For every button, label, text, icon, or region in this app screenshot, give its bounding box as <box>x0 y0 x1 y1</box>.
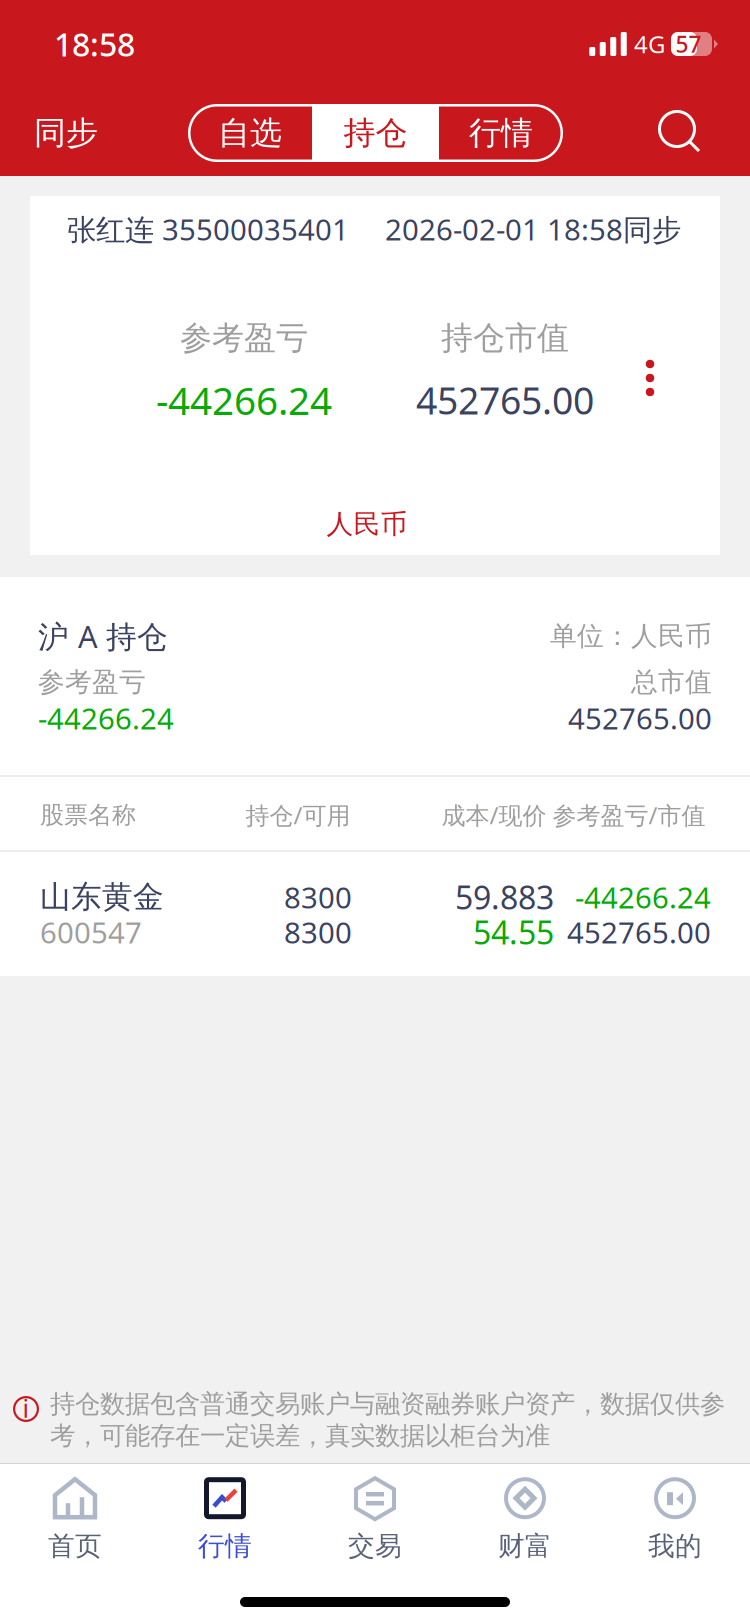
staticText: 持仓/可用 <box>245 799 350 831</box>
staticText: 参考盈亏/市值 <box>552 799 705 831</box>
button[interactable]: 交易 <box>300 1469 450 1569</box>
button[interactable]: 行情 <box>439 104 563 162</box>
staticText: 452765.00 <box>567 912 711 952</box>
button[interactable]: 财富 <box>450 1469 600 1569</box>
staticText: 600547 <box>40 912 142 952</box>
staticText: 同步 <box>34 113 98 153</box>
staticText: 总市值 <box>631 665 712 699</box>
staticText: -44266.24 <box>38 698 174 738</box>
staticText: 参考盈亏 <box>180 318 308 358</box>
staticText: 成本/现价 <box>441 799 546 831</box>
staticText: 持仓数据包含普通交易账户与融资融券账户资产，数据仅供参考，可能存在一定误差，真实… <box>50 1388 725 1452</box>
staticText: 持仓 <box>343 113 407 153</box>
button[interactable]: 首页 <box>0 1469 150 1569</box>
button[interactable]: 同步 <box>0 90 134 176</box>
button[interactable]: More <box>614 335 686 421</box>
staticText: 452765.00 <box>568 698 712 738</box>
staticText: 沪 A 持仓 <box>38 615 168 657</box>
staticText: 股票名称 <box>40 800 136 830</box>
staticText: 59.883 <box>455 875 554 919</box>
staticText: 首页 <box>48 1529 102 1563</box>
staticText: 57 <box>675 29 701 59</box>
staticText: 张红连 35500035401 <box>67 209 349 249</box>
staticText: 8300 <box>284 912 352 952</box>
button[interactable]: 自选 <box>188 104 312 162</box>
staticText: 参考盈亏 <box>38 665 146 699</box>
staticText: 2026-02-01 18:58同步 <box>385 209 681 249</box>
staticText: 财富 <box>498 1529 552 1563</box>
staticText: 18:58 <box>54 22 135 66</box>
button[interactable]: 我的 <box>600 1469 750 1569</box>
staticText: 持仓市值 <box>441 318 569 358</box>
button[interactable]: 持仓 <box>312 104 439 162</box>
button[interactable]: Search <box>626 90 736 176</box>
button[interactable]: 山东黄金 <box>0 852 750 976</box>
staticText: -44266.24 <box>575 877 711 917</box>
staticText: 自选 <box>218 113 282 153</box>
staticText: i <box>22 1391 29 1425</box>
staticText: 4G <box>634 28 665 60</box>
staticText: 行情 <box>469 113 533 153</box>
staticText: 山东黄金 <box>40 878 164 916</box>
staticText: 8300 <box>284 877 352 917</box>
staticText: 54.55 <box>473 910 554 954</box>
staticText: 452765.00 <box>416 375 594 425</box>
staticText: 我的 <box>648 1529 702 1563</box>
staticText: 行情 <box>198 1529 252 1563</box>
staticText: 单位：人民币 <box>550 619 712 653</box>
staticText: -44266.24 <box>156 374 332 426</box>
staticText: 人民币 <box>326 507 407 541</box>
staticText: 交易 <box>348 1529 402 1563</box>
button[interactable]: 行情 <box>150 1469 300 1569</box>
